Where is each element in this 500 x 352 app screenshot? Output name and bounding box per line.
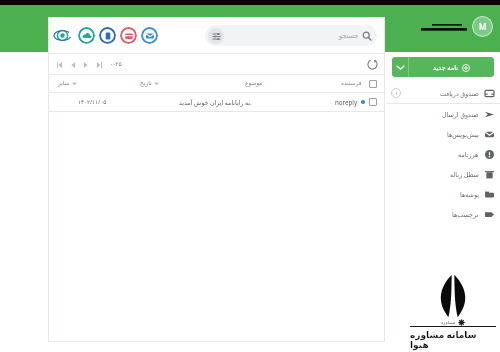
button[interactable]: نامه جدید xyxy=(392,57,494,77)
button[interactable]: Previous xyxy=(66,58,79,71)
button[interactable]: Filter xyxy=(205,25,377,46)
staticText: مشاوره xyxy=(441,320,456,325)
button[interactable]: صندوق ارسال xyxy=(386,104,500,124)
staticText: هرزنامه xyxy=(458,151,479,158)
button[interactable]: Logo xyxy=(54,27,71,44)
other: Search xyxy=(362,31,372,41)
button[interactable]: Select xyxy=(369,98,377,106)
button[interactable]: Filter xyxy=(208,28,224,44)
staticText: سامانه مشاوره هیوا xyxy=(410,328,496,350)
button[interactable]: Next xyxy=(92,58,105,71)
button[interactable]: سطل زباله xyxy=(386,164,500,184)
button[interactable]: Mail xyxy=(141,27,158,44)
staticText: M xyxy=(479,21,487,32)
button[interactable]: Refresh xyxy=(364,56,380,72)
staticText: پوشه‌ها xyxy=(460,191,479,198)
staticText: ۱ xyxy=(395,90,398,96)
button[interactable]: پیش‌نویس‌ها xyxy=(386,124,500,144)
staticText: به رایانامه ایران خوش آمدید. xyxy=(179,98,252,106)
button[interactable]: هرزنامه xyxy=(386,144,500,164)
staticText: سطل زباله xyxy=(450,170,479,179)
staticText: صندوق دریافت xyxy=(440,89,479,98)
staticText: موضوع xyxy=(245,80,263,87)
button[interactable]: Account xyxy=(472,16,493,37)
button[interactable]: Previous xyxy=(53,58,66,71)
staticText: جستجو xyxy=(339,32,359,40)
staticText: noreply xyxy=(335,98,358,106)
button[interactable]: Cloud xyxy=(78,27,95,44)
staticText: تاریخ xyxy=(140,80,152,87)
staticText: پیش‌نویس‌ها xyxy=(447,131,479,138)
button[interactable]: Select xyxy=(369,80,377,88)
button[interactable]: پوشه‌ها xyxy=(386,184,500,204)
staticText: فرستنده xyxy=(341,80,362,87)
button[interactable]: برچسب‌ها xyxy=(386,204,500,224)
button[interactable]: Calendar xyxy=(120,27,137,44)
staticText: صندوق ارسال xyxy=(442,110,479,119)
button[interactable]: Documents xyxy=(99,27,116,44)
staticText: سایز xyxy=(58,80,70,87)
button[interactable]: ۱ xyxy=(386,83,500,103)
button[interactable]: ۱۴۰۲/۱۱/۰۵ xyxy=(48,93,385,111)
staticText: ۰-۲۵ xyxy=(110,60,122,68)
staticText: برچسب‌ها xyxy=(452,211,479,218)
button[interactable]: Next xyxy=(79,58,92,71)
staticText: نامه جدید xyxy=(433,63,459,72)
staticText: ۱۴۰۲/۱۱/۰۵ xyxy=(78,98,107,106)
